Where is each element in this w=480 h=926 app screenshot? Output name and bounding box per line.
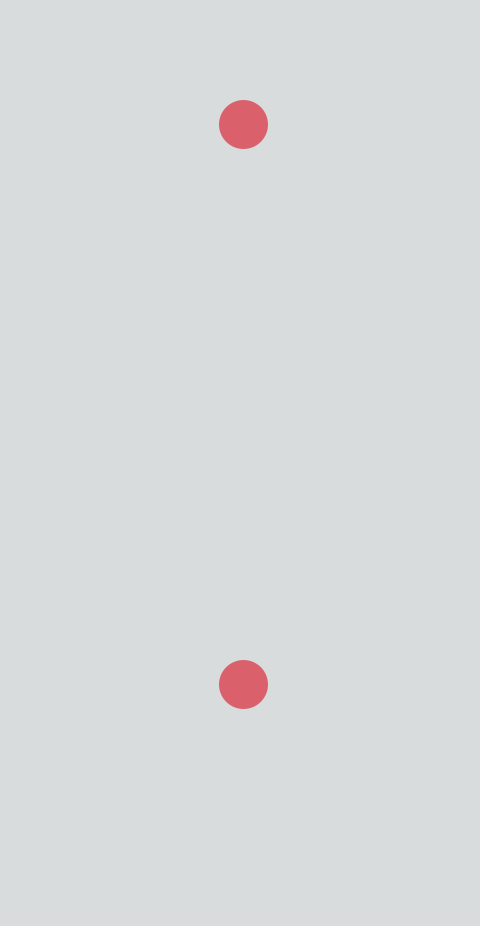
button[interactable]: Secondary action — [219, 660, 268, 709]
button[interactable]: Primary action — [219, 100, 268, 149]
